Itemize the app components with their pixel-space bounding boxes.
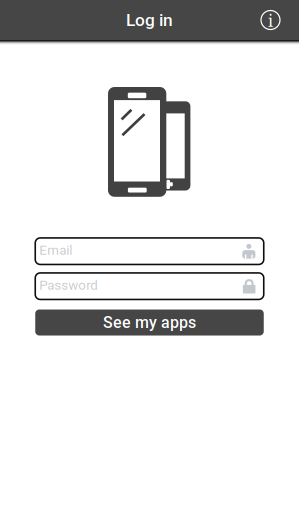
staticText: See my apps [103, 313, 196, 332]
button[interactable]: Email [35, 238, 264, 264]
staticText: Password [39, 277, 98, 293]
button[interactable]: See my apps [35, 309, 264, 335]
staticText: Email [39, 242, 72, 258]
button[interactable]: Password [35, 273, 264, 299]
staticText: Log in [126, 10, 173, 30]
button[interactable]: Information [257, 7, 283, 33]
staticText: i [268, 10, 273, 31]
